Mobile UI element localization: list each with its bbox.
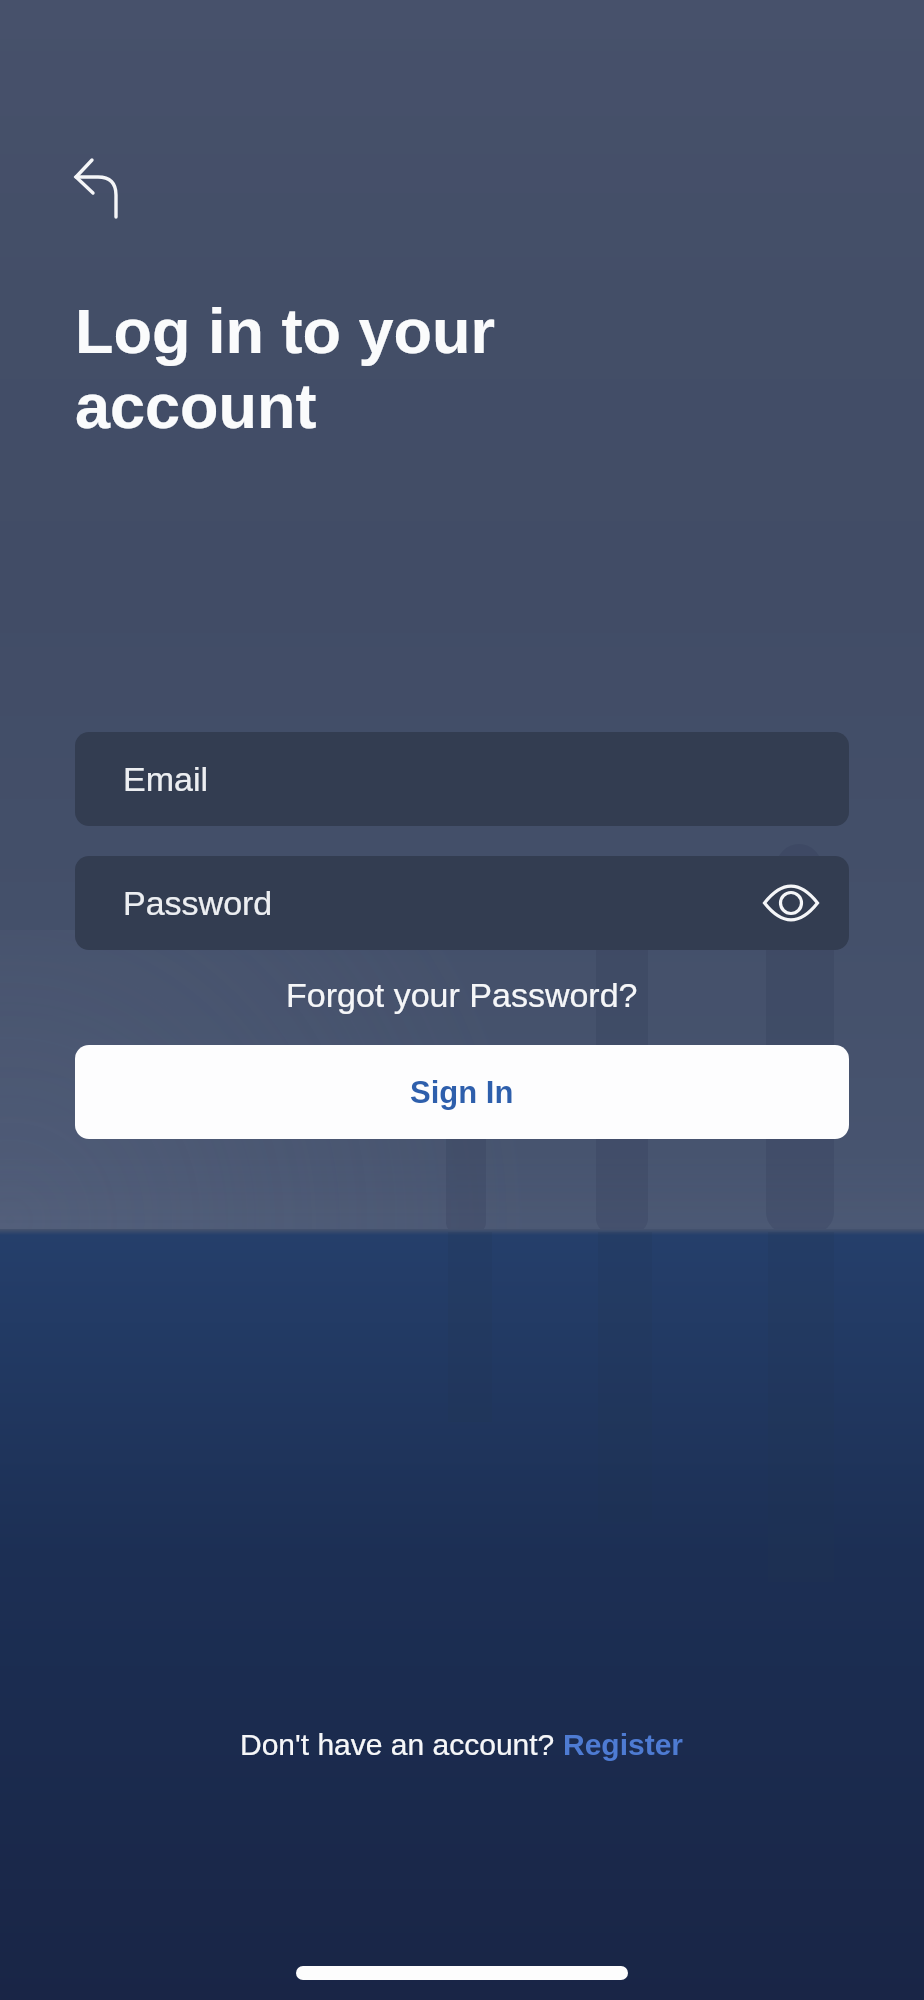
staticText: Email bbox=[123, 760, 209, 798]
button[interactable]: Forgot your Password? bbox=[286, 976, 638, 1014]
button[interactable]: Password bbox=[75, 856, 849, 950]
button[interactable]: Email bbox=[75, 732, 849, 826]
staticText: Password bbox=[123, 884, 273, 922]
staticText: Don't have an account? bbox=[240, 1728, 563, 1762]
button[interactable]: Register bbox=[563, 1728, 684, 1762]
staticText: Sign In bbox=[410, 1075, 514, 1110]
button[interactable]: Sign In bbox=[75, 1045, 849, 1139]
staticText: Log in to your account bbox=[75, 296, 495, 441]
button[interactable] bbox=[56, 142, 136, 236]
